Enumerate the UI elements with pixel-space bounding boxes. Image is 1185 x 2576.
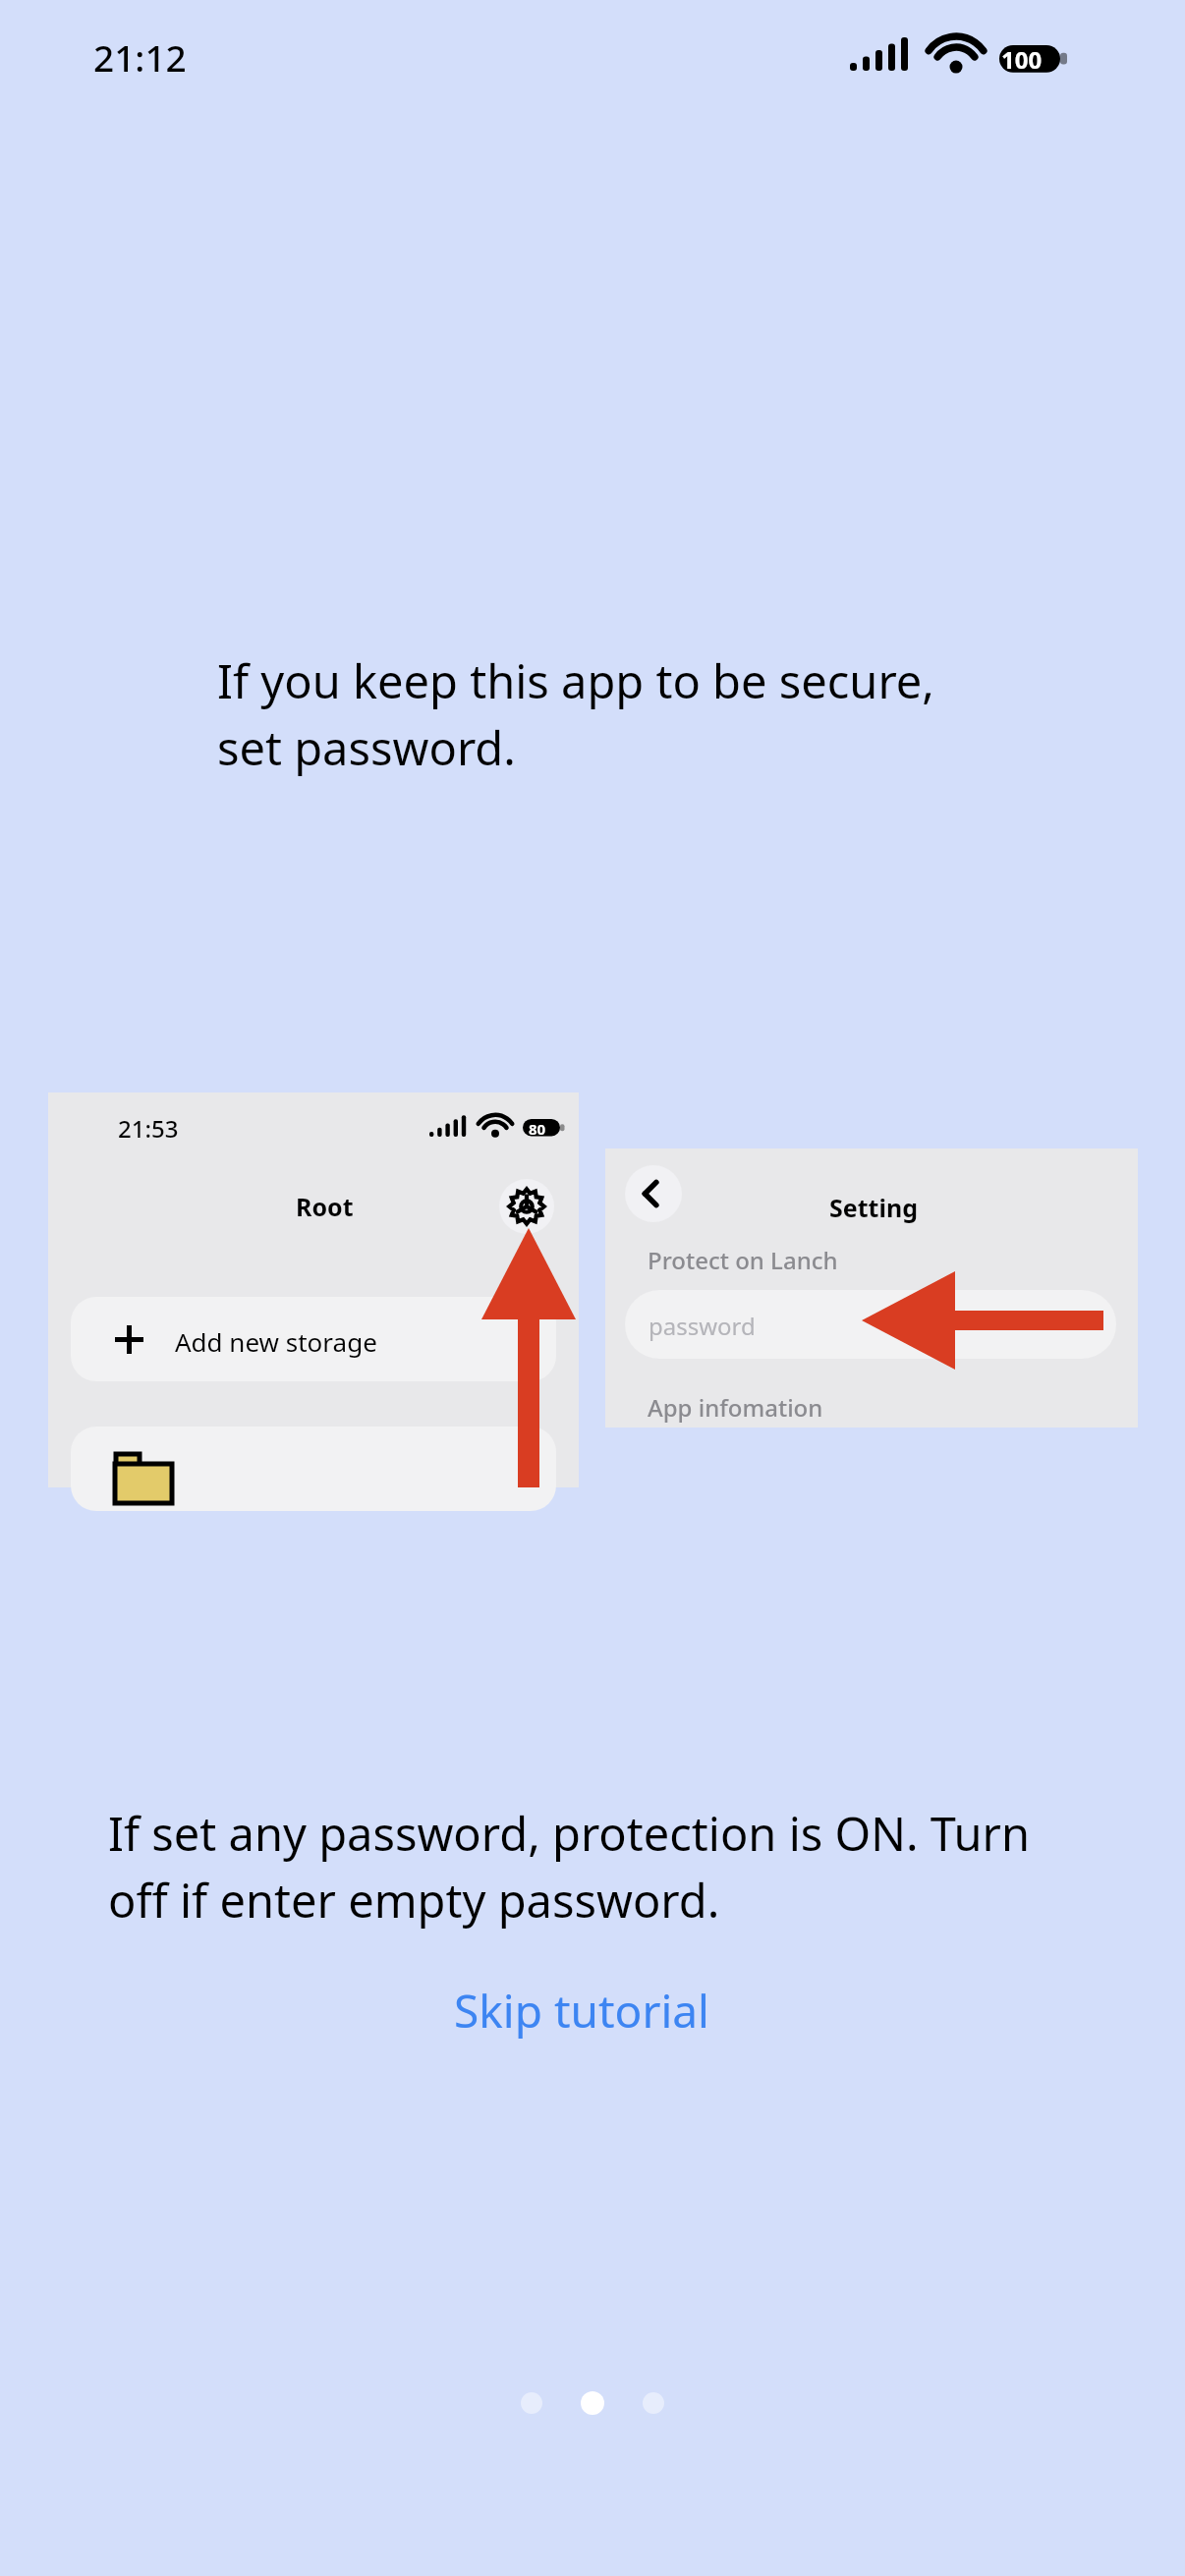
button[interactable]: Add new storage <box>71 1297 556 1381</box>
staticText: App infomation <box>648 1391 823 1424</box>
button[interactable]: Skip tutorial <box>432 1968 747 2039</box>
staticText: If you keep this app to be secure, set p… <box>217 649 934 778</box>
staticText: Add new storage <box>175 1324 377 1359</box>
button[interactable]: Settings <box>499 1179 554 1234</box>
staticText: Setting <box>829 1191 918 1224</box>
staticText: Root <box>296 1190 354 1223</box>
staticText: 21:12 <box>93 32 187 82</box>
button[interactable]: Back <box>625 1165 682 1222</box>
button[interactable]: password <box>625 1290 1116 1359</box>
staticText: 21:53 <box>118 1112 179 1145</box>
staticText: Protect on Lanch <box>648 1244 838 1276</box>
staticText: 100 <box>1001 43 1043 76</box>
staticText: If set any password, protection is ON. T… <box>108 1802 1031 1931</box>
staticText: password <box>649 1310 756 1342</box>
button[interactable] <box>71 1427 556 1511</box>
staticText: Skip tutorial <box>454 1980 709 2042</box>
staticText: 80 <box>529 1119 546 1139</box>
